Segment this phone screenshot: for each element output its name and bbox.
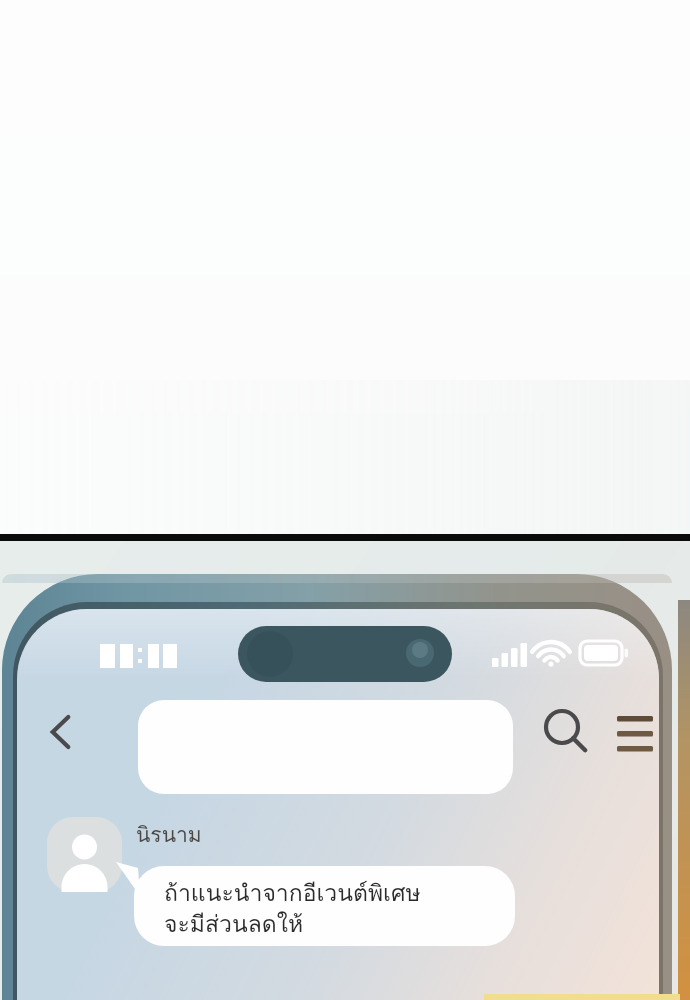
button[interactable]: Menu [608,702,662,756]
button[interactable]: ถ้าแนะนำจากอีเวนต์พิเศษ จะมีส่วนลดให้ [134,866,515,946]
staticText: นิรนาม [136,818,202,851]
button[interactable]: Profile picture of นิรนาม [47,817,122,892]
button[interactable]: Search [535,702,589,756]
staticText: ถ้าแนะนำจากอีเวนต์พิเศษ จะมีส่วนลดให้ [164,875,421,943]
button[interactable]: Back [32,705,86,759]
